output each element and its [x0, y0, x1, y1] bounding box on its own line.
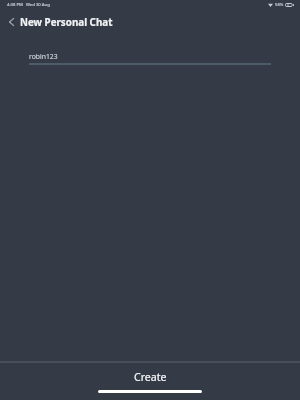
staticText: robin123 — [29, 52, 58, 61]
staticText: New Personal Chat — [20, 16, 113, 29]
button[interactable]: Back — [2, 13, 20, 31]
staticText: 58% — [275, 2, 284, 8]
button[interactable]: Create — [0, 364, 300, 390]
button[interactable]: robin123 — [29, 52, 271, 65]
staticText: 4:38 PM — [7, 2, 23, 8]
staticText: Wed 30 Aug — [26, 2, 50, 8]
staticText: Create — [134, 370, 167, 384]
